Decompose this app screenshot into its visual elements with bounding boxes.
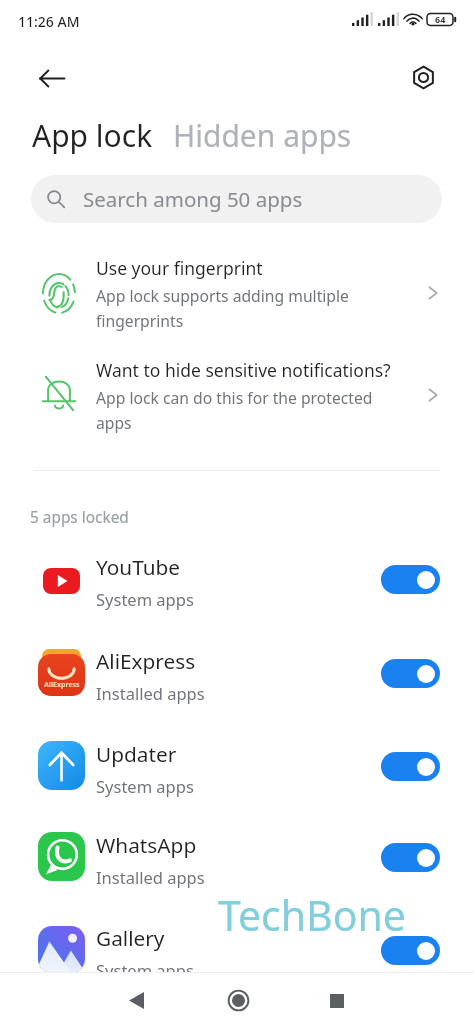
- staticText: AliExpress: [44, 680, 80, 690]
- staticText: Want to hide sensitive notifications?: [96, 358, 391, 382]
- button[interactable]: Toggle YouTube lock: [381, 565, 440, 594]
- button[interactable]: Use your fingerprint: [0, 253, 474, 345]
- staticText: System apps: [96, 588, 194, 610]
- staticText: Search among 50 apps: [83, 185, 303, 213]
- staticText: Installed apps: [96, 866, 205, 888]
- button[interactable]: Back: [108, 973, 164, 1027]
- button[interactable]: Gallery: [0, 926, 474, 1012]
- staticText: 64: [435, 13, 446, 25]
- button[interactable]: Toggle AliExpress lock: [381, 659, 440, 688]
- button[interactable]: Back: [28, 54, 76, 102]
- button[interactable]: Settings: [399, 53, 447, 101]
- staticText: WhatsApp: [96, 831, 197, 859]
- button[interactable]: YouTube: [0, 555, 474, 641]
- staticText: App lock: [32, 115, 153, 156]
- staticText: Updater: [96, 740, 177, 768]
- button[interactable]: Recents: [309, 973, 365, 1027]
- button[interactable]: Toggle WhatsApp lock: [381, 843, 440, 872]
- button[interactable]: Toggle Gallery lock: [381, 936, 440, 965]
- staticText: App lock can do this for the protected a…: [96, 387, 373, 433]
- staticText: Gallery: [96, 924, 165, 952]
- staticText: App lock supports adding multiple finger…: [96, 285, 349, 331]
- button[interactable]: Search among 50 apps: [31, 175, 442, 223]
- staticText: AliExpress: [96, 647, 196, 675]
- button[interactable]: Hidden apps: [173, 115, 352, 156]
- staticText: 11:26 AM: [18, 12, 80, 31]
- staticText: YouTube: [96, 553, 181, 581]
- staticText: System apps: [96, 775, 194, 797]
- button[interactable]: WhatsApp: [0, 833, 474, 919]
- button[interactable]: App lock: [32, 115, 153, 156]
- button[interactable]: Home: [210, 973, 266, 1027]
- staticText: Installed apps: [96, 682, 205, 704]
- staticText: 5 apps locked: [30, 507, 129, 528]
- button[interactable]: AliExpress: [0, 649, 474, 735]
- staticText: System apps: [96, 959, 194, 981]
- staticText: Hidden apps: [173, 115, 352, 156]
- staticText: Use your fingerprint: [96, 256, 263, 280]
- button[interactable]: Toggle Updater lock: [381, 752, 440, 781]
- staticText: TechBone: [218, 887, 406, 943]
- button[interactable]: Want to hide sensitive notifications?: [0, 355, 474, 447]
- button[interactable]: Updater: [0, 742, 474, 828]
